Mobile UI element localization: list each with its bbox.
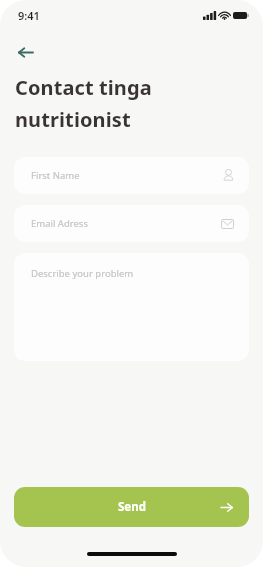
- staticText: First Name: [31, 169, 223, 182]
- button[interactable]: Back: [9, 36, 41, 68]
- button[interactable]: First Name: [14, 157, 249, 194]
- staticText: Contact tinga: [15, 74, 152, 101]
- button[interactable]: Email Adress: [14, 205, 249, 242]
- button[interactable]: Send: [14, 487, 249, 527]
- button[interactable]: Describe your problem: [14, 253, 249, 361]
- staticText: Describe your problem: [31, 267, 134, 280]
- staticText: nutritionist: [15, 106, 131, 133]
- staticText: Send: [118, 499, 146, 515]
- staticText: 9:41: [18, 8, 40, 23]
- staticText: Email Adress: [31, 217, 221, 230]
